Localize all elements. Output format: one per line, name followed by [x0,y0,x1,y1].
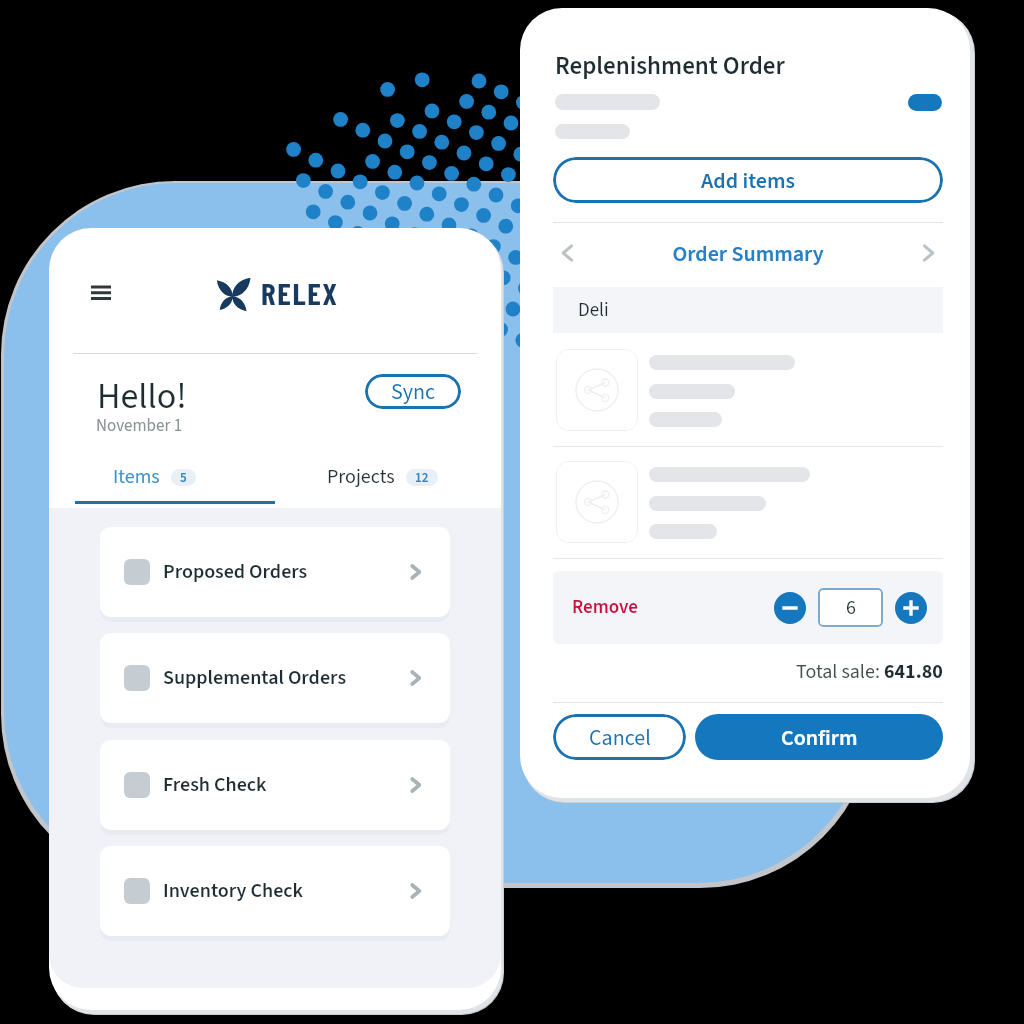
staticText: Projects [327,463,395,491]
button[interactable]: Next [913,238,943,268]
staticText: Add items [701,165,796,196]
button[interactable]: Items [113,460,196,494]
staticText: 12 [415,469,429,486]
staticText: Cancel [589,722,651,753]
staticText: Confirm [781,722,858,753]
button[interactable]: Proposed Orders [100,527,450,617]
button[interactable]: Remove [553,571,657,644]
staticText: Sync [391,376,436,407]
staticText: Proposed Orders [163,558,308,586]
staticText: 641.80 [884,658,943,686]
button[interactable]: Decrease [774,592,806,624]
staticText: RELEX [261,274,339,311]
button[interactable]: Supplemental Orders [100,633,450,723]
staticText: Total sale: [796,658,884,686]
staticText: 5 [180,469,187,486]
staticText: November 1 [96,414,183,438]
staticText: Remove [572,594,638,621]
button[interactable]: Previous [553,238,583,268]
button[interactable]: Increase [895,592,927,624]
staticText: Order Summary [553,238,943,269]
staticText: 6 [846,594,856,622]
staticText: Deli [578,297,609,324]
button[interactable]: Add items [553,157,943,203]
button[interactable]: Menu [85,282,125,322]
staticText: Replenishment Order [555,48,785,84]
staticText: Inventory Check [163,877,304,905]
button[interactable]: Confirm [695,714,943,760]
staticText: Supplemental Orders [163,664,347,692]
button[interactable]: Projects [327,460,438,494]
button[interactable]: Inventory Check [100,846,450,936]
button[interactable]: Quantity [818,588,883,627]
button[interactable]: Fresh Check [100,740,450,830]
staticText: Fresh Check [163,771,267,799]
button[interactable]: Cancel [553,714,686,760]
button[interactable]: Sync [365,374,461,409]
staticText: Hello! [97,371,187,422]
staticText: Items [113,463,160,491]
